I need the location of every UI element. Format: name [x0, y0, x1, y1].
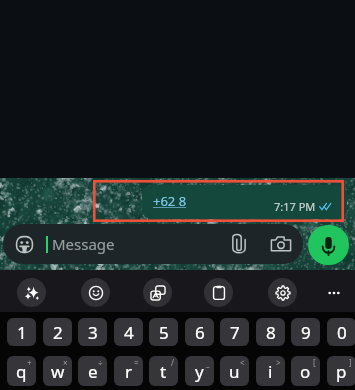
button[interactable]: w [43, 356, 72, 386]
staticText: = [134, 357, 139, 368]
button[interactable]: 9 [291, 318, 320, 346]
staticText: +62 8 [153, 192, 187, 210]
staticText: e [88, 360, 98, 383]
staticText: 8 [266, 321, 276, 344]
button[interactable]: Emoji [81, 278, 110, 307]
button[interactable]: Emoji [12, 232, 36, 256]
button[interactable]: 0 [327, 318, 355, 346]
button[interactable]: r [114, 356, 143, 386]
staticText: o [300, 360, 311, 383]
button[interactable]: 4 [114, 318, 143, 346]
staticText: × [63, 357, 68, 368]
button[interactable]: Record voice message [308, 225, 349, 265]
button[interactable]: Camera [269, 232, 293, 256]
button[interactable]: 5 [149, 318, 178, 346]
staticText: 7 [230, 321, 240, 344]
staticText: / [171, 357, 174, 368]
staticText: p [336, 360, 347, 383]
staticText: 2 [53, 321, 63, 344]
staticText: u [229, 360, 240, 383]
staticText: i [268, 360, 273, 383]
button[interactable]: 6 [185, 318, 214, 346]
staticText: + [27, 357, 32, 368]
button[interactable]: 3 [78, 318, 107, 346]
button[interactable]: 7 [220, 318, 249, 346]
button[interactable]: More options [319, 278, 348, 307]
staticText: w [51, 360, 65, 383]
button[interactable]: o [291, 356, 320, 386]
staticText: r [125, 360, 133, 383]
staticText: _ [206, 357, 210, 368]
button[interactable]: Settings [268, 278, 297, 307]
staticText: < [240, 357, 245, 368]
staticText: 5 [159, 321, 169, 344]
staticText: ] [349, 357, 352, 368]
staticText: [ [313, 357, 316, 368]
staticText: t [160, 360, 167, 383]
button[interactable]: i [256, 356, 285, 386]
staticText: 0 [337, 321, 347, 344]
button[interactable]: Emoji [3, 224, 303, 264]
button[interactable]: +62 8 [142, 185, 347, 219]
staticText: 9 [301, 321, 311, 344]
button[interactable]: t [149, 356, 178, 386]
button[interactable]: Clipboard [204, 278, 233, 307]
button[interactable]: 2 [43, 318, 72, 346]
button[interactable]: u [220, 356, 249, 386]
button[interactable]: p [327, 356, 355, 386]
staticText: ÷ [98, 357, 103, 368]
staticText: 4 [124, 321, 134, 344]
button[interactable]: AI assistant [17, 278, 46, 307]
staticText: 6 [195, 321, 205, 344]
staticText: q [16, 360, 27, 383]
staticText: y [195, 360, 204, 383]
button[interactable]: y [185, 356, 214, 386]
staticText: 3 [88, 321, 98, 344]
button[interactable]: 1 [7, 318, 36, 346]
button[interactable]: Stickers [143, 278, 172, 307]
button[interactable]: q [7, 356, 36, 386]
staticText: 1 [17, 321, 27, 344]
staticText: > [276, 357, 281, 368]
staticText: Message [52, 234, 115, 254]
button[interactable]: 8 [256, 318, 285, 346]
button[interactable]: Attach file [228, 233, 250, 255]
staticText: 7:17 PM [274, 199, 316, 214]
button[interactable]: e [78, 356, 107, 386]
